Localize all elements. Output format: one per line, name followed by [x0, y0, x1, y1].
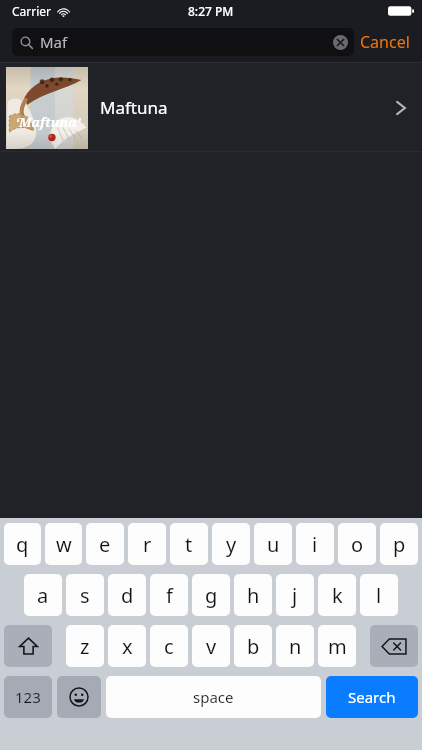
staticText: u [267, 531, 280, 558]
staticText: e [99, 531, 111, 558]
button[interactable]: Maf [12, 28, 354, 56]
staticText: y [226, 531, 237, 558]
button[interactable]: j [276, 574, 314, 616]
staticText: q [16, 531, 29, 558]
staticText: t [185, 531, 193, 558]
button[interactable]: u [254, 523, 292, 565]
button[interactable]: Cancel [360, 26, 410, 58]
staticText: j [292, 582, 298, 609]
button[interactable]: b [234, 625, 272, 667]
button[interactable]: o [338, 523, 376, 565]
staticText: c [164, 633, 174, 660]
button[interactable]: d [108, 574, 146, 616]
staticText: z [80, 633, 90, 660]
button[interactable]: Backspace [370, 625, 418, 667]
staticText: r [143, 531, 152, 558]
button[interactable]: x [108, 625, 146, 667]
staticText: v [206, 633, 217, 660]
button[interactable]: space [106, 676, 321, 718]
staticText: Maftuna [100, 96, 168, 119]
staticText: space [193, 687, 234, 707]
staticText: b [247, 633, 260, 660]
button[interactable]: t [170, 523, 208, 565]
staticText: w [56, 531, 72, 558]
button[interactable]: n [276, 625, 314, 667]
button[interactable]: Search [326, 676, 418, 718]
button[interactable]: c [150, 625, 188, 667]
button[interactable]: 123 [4, 676, 52, 718]
button[interactable]: h [234, 574, 272, 616]
staticText: o [351, 531, 364, 558]
button[interactable]: a [24, 574, 62, 616]
staticText: ʻMaftunaʼ [8, 113, 88, 131]
button[interactable]: m [318, 625, 356, 667]
staticText: i [312, 531, 318, 558]
button[interactable]: p [380, 523, 418, 565]
button[interactable]: w [45, 523, 82, 565]
staticText: f [166, 582, 173, 609]
button[interactable]: z [66, 625, 104, 667]
staticText: Carrier [12, 3, 52, 19]
button[interactable]: q [4, 523, 41, 565]
staticText: g [205, 582, 218, 609]
staticText: h [247, 582, 260, 609]
button[interactable]: e [86, 523, 124, 565]
button[interactable]: Emoji [57, 676, 101, 718]
staticText: m [328, 633, 347, 660]
button[interactable]: f [150, 574, 188, 616]
staticText: k [332, 582, 343, 609]
button[interactable]: Shift [4, 625, 52, 667]
button[interactable]: r [128, 523, 166, 565]
staticText: s [80, 582, 90, 609]
button[interactable]: s [66, 574, 104, 616]
button[interactable]: i [296, 523, 334, 565]
staticText: d [121, 582, 134, 609]
staticText: Search [348, 687, 396, 707]
button[interactable]: l [360, 574, 398, 616]
button[interactable]: k [318, 574, 356, 616]
staticText: a [37, 582, 49, 609]
button[interactable]: Clear text [326, 28, 354, 56]
staticText: Cancel [360, 31, 410, 53]
staticText: 123 [15, 687, 41, 707]
staticText: p [393, 531, 406, 558]
staticText: x [122, 633, 133, 660]
button[interactable]: y [212, 523, 250, 565]
staticText: n [289, 633, 302, 660]
button[interactable]: v [192, 625, 230, 667]
staticText: Maf [40, 32, 68, 52]
staticText: 8:27 PM [188, 3, 234, 19]
button[interactable]: g [192, 574, 230, 616]
staticText: l [376, 582, 382, 609]
button[interactable]: ʻMaftunaʼ [0, 63, 422, 152]
